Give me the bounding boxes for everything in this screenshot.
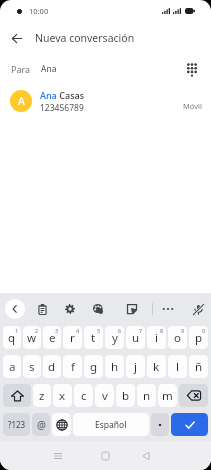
button[interactable]: f [63, 355, 82, 378]
staticText: 3 [55, 327, 59, 334]
button[interactable]: Temas [88, 299, 108, 319]
button[interactable]: r [63, 326, 82, 349]
button[interactable]: k [147, 355, 166, 378]
staticText: v [102, 388, 108, 404]
staticText: n [143, 388, 151, 404]
staticText: 7 [139, 327, 143, 334]
staticText: x [59, 388, 66, 404]
button[interactable]: ñ [189, 355, 208, 378]
button[interactable]: Stickers [122, 299, 142, 319]
staticText: z [39, 388, 45, 404]
staticText: e [49, 330, 56, 346]
button[interactable]: a [3, 355, 21, 378]
button[interactable]: c [74, 384, 93, 407]
staticText: i [155, 330, 158, 346]
button[interactable]: m [158, 384, 177, 407]
button[interactable]: Atrás [135, 445, 156, 466]
staticText: 4 [76, 327, 80, 334]
button[interactable]: z [33, 384, 51, 407]
button[interactable]: t [84, 326, 103, 349]
button[interactable]: x [53, 384, 72, 407]
button[interactable]: @ [32, 413, 50, 436]
staticText: ?123 [8, 419, 26, 430]
button[interactable]: Aceptar [171, 413, 208, 436]
button[interactable]: o [168, 326, 187, 349]
button[interactable]: b [116, 384, 135, 407]
staticText: 9 [181, 327, 185, 334]
button[interactable]: Portapapeles [32, 299, 52, 319]
button[interactable]: l [168, 355, 187, 378]
staticText: 6 [118, 327, 122, 334]
staticText: ñ [195, 359, 203, 375]
staticText: d [48, 359, 56, 375]
staticText: @ [37, 418, 46, 432]
staticText: l [176, 359, 179, 375]
button[interactable]: Retroceso [179, 384, 208, 407]
staticText: 1 [15, 327, 19, 334]
staticText: Ana [40, 89, 57, 101]
button[interactable]: Recientes [47, 445, 68, 466]
staticText: o [174, 330, 181, 346]
staticText: Ana [41, 63, 57, 75]
button[interactable]: h [105, 355, 124, 378]
staticText: Español [95, 419, 127, 431]
staticText: f [71, 359, 75, 375]
staticText: p [195, 330, 203, 346]
staticText: w [27, 330, 37, 346]
button[interactable]: Punto [151, 413, 169, 436]
button[interactable]: Espacio [73, 413, 149, 436]
staticText: m [162, 388, 173, 404]
staticText: t [91, 330, 96, 346]
button[interactable]: u [126, 326, 145, 349]
staticText: y [112, 330, 118, 346]
staticText: g [90, 359, 98, 375]
staticText: j [134, 359, 137, 375]
staticText: Nueva conversación [35, 31, 135, 45]
button[interactable]: n [137, 384, 156, 407]
button[interactable]: g [84, 355, 103, 378]
button[interactable]: Atrás [5, 26, 29, 50]
button[interactable]: s [23, 355, 41, 378]
button[interactable]: Mayúsculas [3, 384, 31, 407]
staticText: h [111, 359, 119, 375]
staticText: 0 [202, 327, 206, 334]
staticText: a [9, 359, 16, 375]
staticText: b [122, 388, 130, 404]
button[interactable]: Expandir [5, 299, 25, 319]
staticText: Para [11, 63, 31, 75]
button[interactable]: p [189, 326, 208, 349]
button[interactable]: d [43, 355, 61, 378]
button[interactable]: i [147, 326, 166, 349]
button[interactable]: Más opciones [158, 299, 178, 319]
button[interactable]: Idioma [52, 413, 71, 436]
staticText: r [70, 330, 75, 346]
button[interactable]: Micrófono desactivado [188, 299, 208, 319]
button[interactable]: A [0, 84, 211, 118]
staticText: 10:00 [29, 6, 49, 16]
staticText: k [153, 359, 160, 375]
staticText: s [29, 359, 35, 375]
staticText: Móvil [183, 101, 202, 111]
staticText: c [81, 388, 87, 404]
button[interactable]: Teclado de marcación [180, 57, 204, 81]
button[interactable]: v [95, 384, 114, 407]
button[interactable]: Inicio [95, 445, 116, 466]
staticText: q [8, 330, 16, 346]
button[interactable]: e [43, 326, 61, 349]
staticText: 123456789 [40, 102, 84, 114]
staticText: 5 [97, 327, 101, 334]
button[interactable]: q [3, 326, 21, 349]
button[interactable]: j [126, 355, 145, 378]
staticText: Casas [57, 89, 85, 101]
button[interactable]: w [23, 326, 41, 349]
button[interactable]: ?123 [3, 413, 30, 436]
staticText: u [132, 330, 140, 346]
staticText: 2 [35, 327, 39, 334]
staticText: 8 [160, 327, 164, 334]
button[interactable]: y [105, 326, 124, 349]
staticText: A [18, 94, 25, 108]
button[interactable]: Ajustes [60, 299, 80, 319]
